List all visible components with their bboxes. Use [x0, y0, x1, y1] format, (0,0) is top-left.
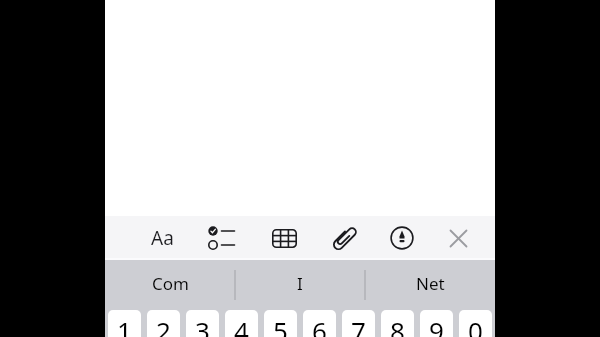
staticText: 5 [273, 313, 288, 337]
staticText: Com [152, 272, 189, 295]
button[interactable]: 8 [381, 310, 414, 337]
button[interactable]: 4 [225, 310, 258, 337]
button[interactable] [262, 216, 306, 260]
staticText: 9 [429, 313, 444, 337]
button[interactable] [323, 216, 367, 260]
button[interactable]: 9 [420, 310, 453, 337]
staticText: 6 [312, 313, 327, 337]
button[interactable]: 5 [264, 310, 297, 337]
staticText: 1 [117, 313, 132, 337]
button[interactable]: 2 [147, 310, 180, 337]
staticText: 4 [234, 313, 249, 337]
button[interactable] [380, 216, 424, 260]
staticText: 2 [156, 313, 171, 337]
button[interactable]: 3 [186, 310, 219, 337]
button[interactable] [200, 216, 244, 260]
button[interactable]: 0 [459, 310, 492, 337]
staticText: I [297, 272, 303, 295]
button[interactable]: Aa [140, 216, 184, 260]
staticText: 0 [468, 313, 483, 337]
button[interactable]: 6 [303, 310, 336, 337]
button[interactable]: Com [105, 260, 235, 307]
button[interactable]: I [235, 260, 365, 307]
staticText: Net [416, 272, 445, 295]
staticText: 8 [390, 313, 405, 337]
button[interactable]: 7 [342, 310, 375, 337]
staticText: Aa [151, 225, 174, 251]
staticText: 7 [351, 313, 366, 337]
button[interactable]: 1 [108, 310, 141, 337]
button[interactable]: Net [365, 260, 495, 307]
staticText: 3 [195, 313, 210, 337]
button[interactable] [436, 216, 480, 260]
